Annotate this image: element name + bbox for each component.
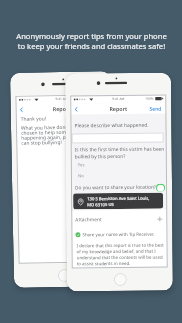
button[interactable]: Add attachment — [156, 216, 163, 223]
staticText: Thank you! — [21, 115, 47, 123]
button[interactable]: Back — [15, 104, 28, 115]
staticText: 9:41 AM — [55, 97, 68, 101]
staticText: Please describe what happened. — [74, 122, 150, 129]
staticText: Anonymously report tips from your phone … — [16, 31, 167, 51]
staticText: Report — [109, 105, 127, 112]
staticText: Is this the first time this victim has b… — [75, 146, 165, 159]
staticText: 130 S Bemiston Ave Saint Louis, MO 63105… — [87, 196, 150, 207]
staticText: Yes — [78, 162, 85, 168]
button[interactable] — [72, 133, 164, 143]
button[interactable]: Yes — [78, 162, 118, 169]
staticText: 9:41 AM — [112, 97, 125, 101]
button[interactable]: Back — [70, 103, 82, 114]
staticText: I declare that this report is true to th… — [76, 242, 165, 266]
button[interactable]: 130 S Bemiston Ave Saint Louis, MO 63105… — [73, 193, 163, 209]
staticText: What you have done is incredible. You ha… — [21, 123, 112, 147]
staticText: 100% — [85, 96, 94, 101]
button[interactable]: Home — [114, 273, 127, 286]
staticText: Share your name with Tip Receiver. — [82, 231, 154, 237]
staticText: Send — [149, 105, 162, 112]
staticText: Attachment — [75, 216, 102, 223]
button[interactable]: Share your name with Tip Receiver. — [75, 230, 163, 238]
staticText: Report — [53, 105, 71, 112]
button[interactable]: No — [78, 173, 118, 180]
button[interactable]: Send — [149, 103, 162, 114]
button[interactable]: Do you want to share your location? — [75, 183, 165, 192]
staticText: Do you want to share your location? — [75, 184, 156, 191]
button[interactable]: Attachment — [75, 215, 163, 224]
staticText: No — [78, 173, 84, 179]
staticText: 100% — [145, 97, 154, 101]
button[interactable]: Home — [58, 269, 71, 282]
